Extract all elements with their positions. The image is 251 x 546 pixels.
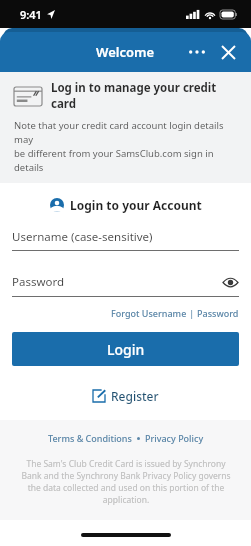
button[interactable]: Username (case-sensitive) [12, 229, 239, 251]
staticText: Password [197, 307, 239, 319]
staticText: Username (case-sensitive) [12, 229, 153, 245]
button[interactable]: Privacy Policy [145, 432, 204, 444]
staticText: Register [111, 388, 159, 404]
staticText: | [187, 307, 197, 319]
staticText: Welcome [96, 43, 155, 61]
button[interactable]: Register [0, 388, 251, 404]
staticText: Note that your credit card account login… [14, 119, 239, 174]
button[interactable]: Login [12, 332, 239, 366]
button[interactable]: Show password [221, 273, 239, 291]
button[interactable]: Login to your Account [0, 197, 251, 213]
staticText: Login [107, 340, 145, 359]
button[interactable]: Close [215, 39, 241, 65]
staticText: Password [12, 274, 65, 290]
button[interactable]: Terms & Conditions [48, 432, 132, 444]
staticText: Login to your Account [70, 197, 202, 213]
staticText: The Sam's Club Credit Card is issued by … [21, 458, 231, 506]
button[interactable]: Forgot Username [111, 307, 239, 319]
staticText: Privacy Policy [145, 432, 204, 444]
button[interactable]: Password [12, 273, 239, 297]
button[interactable]: More options [185, 40, 209, 64]
staticText: 9:41 [20, 7, 42, 22]
staticText: Forgot Username [111, 307, 187, 319]
staticText: Log in to manage your credit card [51, 80, 239, 112]
staticText: Terms & Conditions [48, 432, 132, 444]
